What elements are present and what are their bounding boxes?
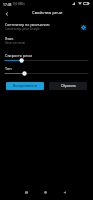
button[interactable]: Сбросить — [49, 82, 87, 90]
button[interactable]: Воспроизвести — [6, 82, 44, 90]
staticText: Синтезатор по умолчанию — [5, 22, 50, 27]
staticText: Сбросить — [61, 84, 76, 88]
button[interactable]: Назад — [1, 8, 12, 19]
button[interactable]: Недавние приложения — [20, 186, 33, 199]
staticText: Синтезатор речи Google — [5, 27, 40, 31]
staticText: Свойства речи — [32, 10, 63, 16]
button[interactable]: Язык — [0, 34, 93, 47]
button[interactable]: Настройки синтезатора — [78, 22, 89, 33]
staticText: 17:38 — [3, 2, 12, 6]
button[interactable]: Главный экран — [39, 186, 52, 199]
staticText: Язык системы — [5, 41, 26, 45]
staticText: Скорость речи — [5, 53, 32, 58]
button[interactable]: Синтезатор по умолчанию — [0, 20, 93, 33]
button[interactable]: Назад — [58, 186, 71, 199]
staticText: 0,0 KB/s — [13, 2, 25, 6]
staticText: Воспроизвести — [13, 84, 37, 88]
staticText: Тон — [5, 66, 12, 71]
staticText: Язык — [5, 36, 14, 41]
